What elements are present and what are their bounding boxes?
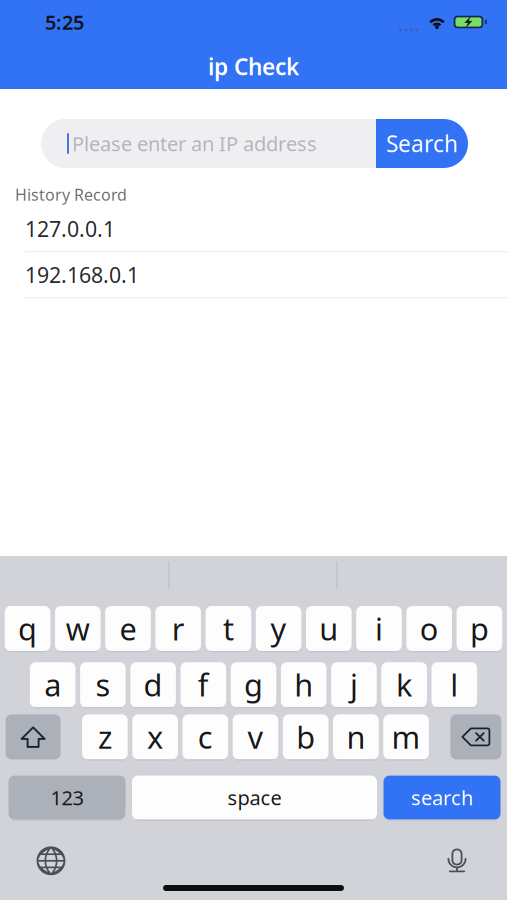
button[interactable]: c [182, 714, 228, 761]
button[interactable]: d [130, 662, 176, 708]
button[interactable]: i [356, 606, 402, 652]
staticText: j [350, 664, 358, 705]
staticText: 123 [50, 784, 83, 811]
button[interactable]: p [457, 606, 502, 652]
button[interactable]: s [80, 662, 126, 708]
staticText: i [375, 608, 383, 649]
staticText: 192.168.0.1 [25, 261, 139, 289]
button[interactable]: m [383, 714, 429, 761]
staticText: r [172, 608, 185, 649]
button[interactable]: t [206, 606, 251, 652]
button[interactable]: Please enter an IP address [41, 119, 422, 168]
staticText: b [296, 716, 315, 757]
staticText: c [198, 716, 213, 757]
staticText: 5:25 [45, 9, 84, 35]
staticText: d [144, 664, 163, 705]
staticText: search [411, 784, 473, 811]
staticText: y [271, 608, 287, 649]
staticText: space [227, 784, 281, 811]
button[interactable]: Change keyboard [36, 846, 66, 876]
staticText: k [396, 664, 412, 705]
button[interactable]: 192.168.0.1 [0, 252, 507, 298]
button[interactable]: j [331, 662, 377, 708]
staticText: f [198, 664, 209, 705]
staticText: e [119, 608, 136, 649]
button[interactable]: a [30, 662, 75, 708]
button[interactable]: u [306, 606, 352, 652]
staticText: x [147, 716, 163, 757]
button[interactable]: n [333, 714, 379, 761]
button[interactable]: h [281, 662, 326, 708]
button[interactable]: space [132, 776, 377, 821]
button[interactable]: q [5, 606, 50, 652]
button[interactable]: Shift [6, 714, 61, 761]
button[interactable]: b [283, 714, 328, 761]
staticText: History Record [15, 184, 127, 205]
staticText: s [95, 664, 110, 705]
staticText: o [420, 608, 439, 649]
button[interactable]: x [132, 714, 178, 761]
staticText: z [98, 716, 112, 757]
button[interactable]: Dictation [443, 846, 471, 876]
staticText: p [470, 608, 489, 649]
button[interactable]: o [406, 606, 452, 652]
button[interactable]: 127.0.0.1 [0, 206, 507, 252]
staticText: 127.0.0.1 [25, 215, 115, 243]
button[interactable]: r [155, 606, 201, 652]
button[interactable]: y [256, 606, 301, 652]
staticText: n [346, 716, 365, 757]
staticText: w [66, 608, 90, 649]
button[interactable]: w [55, 606, 101, 652]
staticText: ip Check [208, 51, 299, 81]
button[interactable]: z [82, 714, 128, 761]
staticText: v [247, 716, 263, 757]
staticText: Search [386, 128, 458, 158]
staticText: q [18, 608, 37, 649]
staticText: Please enter an IP address [72, 130, 317, 157]
button[interactable]: search [383, 776, 500, 821]
staticText: m [392, 716, 421, 757]
button[interactable]: Delete [450, 714, 501, 761]
staticText: t [223, 608, 234, 649]
button[interactable]: v [233, 714, 278, 761]
button[interactable]: 123 [8, 776, 125, 821]
button[interactable]: f [180, 662, 226, 708]
staticText: u [319, 608, 338, 649]
staticText: a [44, 664, 61, 705]
button[interactable]: l [431, 662, 477, 708]
button[interactable]: g [231, 662, 276, 708]
staticText: h [294, 664, 313, 705]
staticText: g [244, 664, 263, 705]
button[interactable]: k [381, 662, 427, 708]
staticText: l [450, 664, 458, 705]
button[interactable]: e [105, 606, 151, 652]
button[interactable]: Search [376, 119, 468, 168]
